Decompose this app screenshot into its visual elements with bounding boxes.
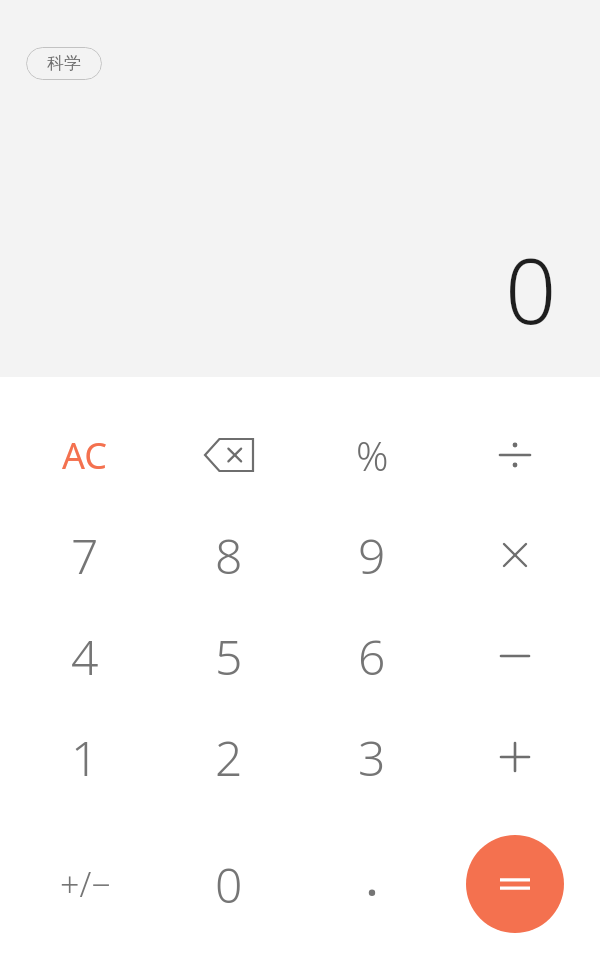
button[interactable]: 9 [312,507,432,603]
staticText: 3 [358,725,386,790]
button[interactable]: 科学 [26,47,102,80]
button[interactable]: 3 [312,709,432,805]
staticText: AC [62,431,108,480]
button[interactable]: 6 [312,608,432,704]
button[interactable]: Minus [455,608,575,704]
staticText: 5 [215,624,243,689]
button[interactable]: AC [25,407,145,503]
button[interactable]: % [312,407,432,503]
staticText: +/− [60,861,111,907]
staticText: 0 [215,852,243,917]
button[interactable]: +/− [25,836,145,932]
button[interactable]: Multiply [455,507,575,603]
staticText: 2 [215,725,243,790]
button[interactable]: Backspace [169,407,289,503]
button[interactable]: 4 [25,608,145,704]
staticText: 1 [71,725,99,790]
staticText: 科学 [47,53,81,74]
button[interactable]: 8 [169,507,289,603]
staticText: 0 [505,228,557,351]
staticText: 4 [71,624,99,689]
button[interactable]: 1 [25,709,145,805]
button[interactable]: 5 [169,608,289,704]
button[interactable]: Decimal point [312,836,432,932]
staticText: 6 [358,624,386,689]
button[interactable]: Plus [455,709,575,805]
staticText: 8 [215,523,243,588]
button[interactable]: Divide [455,407,575,503]
staticText: 7 [71,523,99,588]
button[interactable]: 0 [169,836,289,932]
staticText: 9 [358,523,386,588]
staticText: % [356,428,389,482]
button[interactable]: Equals [466,835,564,933]
button[interactable]: 7 [25,507,145,603]
button[interactable]: 2 [169,709,289,805]
